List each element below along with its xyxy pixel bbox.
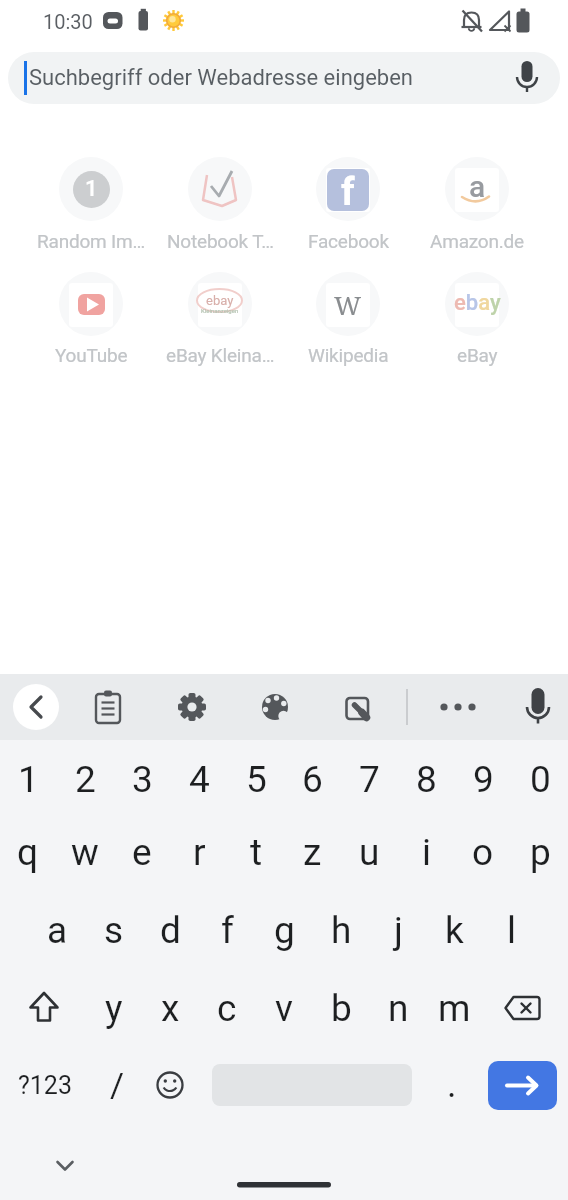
staticText: W [334,287,362,322]
button[interactable] [434,684,482,732]
staticText: n [388,987,409,1030]
button[interactable] [293,155,403,257]
button[interactable] [514,684,562,732]
button[interactable]: / [89,1049,145,1121]
staticText: 3 [132,758,153,801]
staticText: . [447,1064,457,1106]
button[interactable]: p [512,816,568,888]
staticText: Random Im… [37,230,146,252]
staticText: f [221,909,234,952]
staticText: 10:30 [43,10,93,33]
button[interactable]: s [86,894,142,966]
staticText: r [193,831,206,874]
button[interactable]: g [256,894,312,966]
button[interactable]: 9 [455,743,511,815]
button[interactable]: c [199,972,255,1044]
staticText: Kleinanzeigen [201,307,239,314]
button[interactable]: l [483,894,539,966]
staticText: 1 [85,176,98,202]
button[interactable] [36,155,146,257]
button[interactable]: a [29,894,85,966]
button[interactable]: r [171,816,227,888]
button[interactable] [168,684,216,732]
button[interactable] [333,684,381,732]
button[interactable]: f [199,894,255,966]
staticText: j [394,909,403,952]
staticText: v [275,987,293,1030]
staticText: g [274,909,295,952]
button[interactable]: u [341,816,397,888]
button[interactable]: z [284,816,340,888]
staticText: 1 [18,758,39,801]
button[interactable]: 0 [512,743,568,815]
button[interactable]: j [370,894,426,966]
staticText: z [303,831,322,874]
staticText: Amazon.de [430,230,524,252]
button[interactable]: k [426,894,482,966]
button[interactable]: o [455,816,511,888]
staticText: w [71,831,99,874]
button[interactable] [251,684,299,732]
button[interactable]: b [313,972,369,1044]
button[interactable]: . [424,1049,480,1121]
staticText: p [530,831,551,874]
staticText: 5 [246,758,267,801]
button[interactable]: 5 [228,743,284,815]
staticText: q [17,831,39,874]
staticText: c [217,987,237,1030]
button[interactable] [510,56,554,100]
staticText: 9 [473,758,494,801]
button[interactable]: m [426,972,482,1044]
button[interactable]: 7 [341,743,397,815]
staticText: m [438,987,471,1030]
button[interactable]: 4 [171,743,227,815]
staticText: 0 [530,758,551,801]
button[interactable]: ?123 [17,1061,73,1109]
button[interactable] [37,1144,93,1188]
button[interactable]: x [142,972,198,1044]
button[interactable]: 3 [114,743,170,815]
button[interactable]: w [57,816,113,888]
staticText: ?123 [18,1071,72,1100]
button[interactable]: 8 [398,743,454,815]
button[interactable]: n [370,972,426,1044]
button[interactable]: d [142,894,198,966]
staticText: a [47,909,68,952]
button[interactable] [165,155,275,257]
staticText: Suchbegriff oder Webadresse eingeben [29,65,413,91]
button[interactable]: 1 [0,743,56,815]
button[interactable]: t [228,816,284,888]
staticText: s [104,909,124,952]
button[interactable] [165,270,275,372]
button[interactable]: i [398,816,454,888]
button[interactable]: 6 [284,743,340,815]
staticText: k [445,909,464,952]
staticText: i [422,831,431,874]
button[interactable]: q [0,816,56,888]
staticText: / [110,1065,125,1105]
button[interactable] [36,270,146,372]
staticText: 7 [359,758,380,801]
button[interactable] [84,684,132,732]
button[interactable] [142,1049,198,1121]
button[interactable] [16,972,82,1044]
button[interactable] [422,270,532,372]
staticText: a [469,169,486,204]
button[interactable]: v [256,972,312,1044]
staticText: f [341,170,355,211]
button[interactable]: 2 [57,743,113,815]
button[interactable]: h [313,894,369,966]
button[interactable]: e [114,816,170,888]
button[interactable] [490,972,556,1044]
button[interactable] [12,684,60,732]
button[interactable] [422,155,532,257]
button[interactable] [293,270,403,372]
button[interactable] [8,52,560,104]
button[interactable]: y [86,972,142,1044]
staticText: o [472,831,494,874]
staticText: 2 [75,758,96,801]
button[interactable] [488,1061,557,1110]
staticText: b [331,987,352,1030]
staticText: e [132,831,152,874]
